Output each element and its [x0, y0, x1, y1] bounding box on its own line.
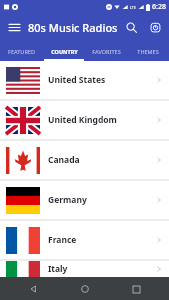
- button[interactable]: Sleep timer: [147, 19, 163, 35]
- staticText: France: [48, 234, 77, 246]
- button[interactable]: United States: [0, 61, 169, 99]
- staticText: Italy: [48, 263, 68, 275]
- button[interactable]: FAVORITES: [85, 41, 127, 61]
- staticText: FAVORITES: [92, 48, 121, 55]
- staticText: Canada: [48, 154, 80, 166]
- button[interactable]: Germany: [0, 181, 169, 219]
- staticText: Germany: [48, 194, 87, 206]
- staticText: THEMES: [137, 48, 159, 55]
- button[interactable]: Home: [76, 280, 94, 298]
- button[interactable]: United Kingdom: [0, 101, 169, 139]
- button[interactable]: FEATURED: [0, 41, 43, 61]
- button[interactable]: Search: [123, 19, 139, 35]
- staticText: COUNTRY: [51, 48, 78, 55]
- button[interactable]: Canada: [0, 141, 169, 179]
- staticText: United Kingdom: [48, 114, 117, 126]
- staticText: United States: [48, 74, 106, 86]
- staticText: 80s Music Radios: [28, 20, 118, 35]
- button[interactable]: COUNTRY: [43, 41, 85, 61]
- button[interactable]: Back: [24, 280, 42, 298]
- button[interactable]: France: [0, 221, 169, 259]
- button[interactable]: THEMES: [127, 41, 169, 61]
- staticText: FEATURED: [8, 48, 35, 55]
- button[interactable]: Recent apps: [127, 280, 145, 298]
- staticText: 6:28: [152, 2, 166, 12]
- button[interactable]: Italy: [0, 261, 169, 277]
- staticText: LTE: [130, 5, 136, 10]
- button[interactable]: Open navigation menu: [6, 19, 22, 35]
